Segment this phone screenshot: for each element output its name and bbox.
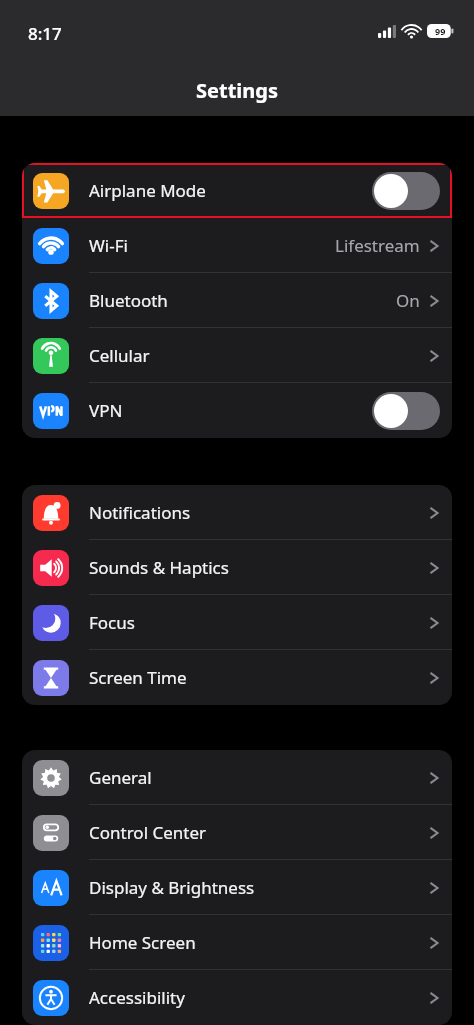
button[interactable]: Control Center [22,805,452,860]
button[interactable]: Wi-Fi [22,218,452,273]
staticText: Screen Time [89,666,187,689]
staticText: General [89,766,152,789]
staticText: Control Center [89,821,207,844]
button[interactable]: Home Screen [22,915,452,970]
button[interactable]: Focus [22,595,452,650]
staticText: Display & Brightness [89,876,255,899]
button[interactable]: Toggle [372,392,440,430]
staticText: Focus [89,611,135,634]
staticText: Home Screen [89,931,196,954]
staticText: Cellular [89,344,150,367]
button[interactable]: Display & Brightness [22,860,452,915]
staticText: Lifestream [335,234,420,257]
staticText: Wi-Fi [89,234,128,257]
button[interactable]: Cellular [22,328,452,383]
staticText: Sounds & Haptics [89,556,229,579]
staticText: On [396,289,420,312]
button[interactable]: Notifications [22,485,452,540]
staticText: Settings [196,77,278,104]
button[interactable]: Accessibility [22,970,452,1025]
staticText: 99 [435,25,446,37]
button[interactable]: General [22,750,452,805]
staticText: Bluetooth [89,289,168,312]
staticText: 8:17 [28,22,62,45]
staticText: Notifications [89,501,191,524]
button[interactable]: VPN [22,383,452,438]
staticText: Accessibility [89,986,185,1009]
button[interactable]: Bluetooth [22,273,452,328]
button[interactable]: Screen Time [22,650,452,705]
staticText: Airplane Mode [89,179,206,202]
button[interactable]: Sounds & Haptics [22,540,452,595]
button[interactable]: Toggle [372,172,440,210]
staticText: VPN [89,399,123,422]
button[interactable]: Airplane Mode [22,163,452,218]
